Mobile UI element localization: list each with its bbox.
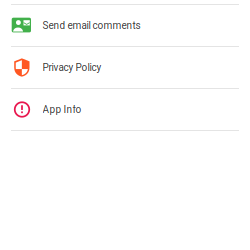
staticText: Send email comments	[42, 20, 140, 31]
staticText: App Info	[42, 104, 81, 115]
button[interactable]: App Info	[0, 89, 250, 130]
button[interactable]: Send email comments	[0, 5, 250, 46]
staticText: Privacy Policy	[42, 62, 101, 73]
button[interactable]: Privacy Policy	[0, 47, 250, 88]
